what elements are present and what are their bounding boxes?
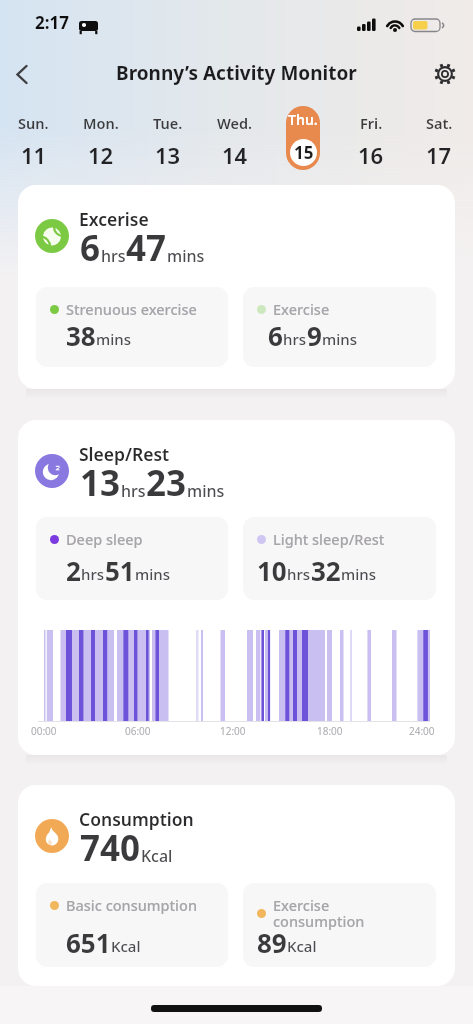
button[interactable]: Sun. (0, 106, 67, 170)
staticText: 89 (257, 925, 287, 960)
staticText: Consumption (79, 807, 194, 831)
staticText: Mon. (83, 113, 119, 133)
staticText: 18:00 (317, 724, 343, 738)
button[interactable]: Sleep/Rest (18, 420, 455, 755)
button[interactable]: Thu. (286, 106, 320, 170)
staticText: hrs (283, 329, 307, 349)
staticText: 740 (80, 824, 141, 872)
staticText: Sleep/Rest (79, 442, 170, 466)
staticText: mins (167, 245, 205, 267)
staticText: 47 (126, 224, 167, 272)
staticText: 32 (311, 553, 341, 588)
staticText: 6 (268, 318, 283, 353)
staticText: Light sleep/Rest (273, 529, 385, 549)
staticText: 24:00 (409, 724, 435, 738)
button[interactable]: Mon. (67, 106, 134, 170)
staticText: 11 (21, 140, 47, 170)
staticText: 12:00 (220, 724, 246, 738)
staticText: 13 (155, 140, 181, 170)
staticText: 06:00 (125, 724, 151, 738)
staticText: 13 (80, 459, 121, 507)
staticText: Tue. (153, 113, 183, 133)
staticText: Kcal (287, 936, 317, 956)
button[interactable]: Deep sleep (36, 517, 228, 600)
staticText: Bronny’s Activity Monitor (116, 60, 357, 86)
staticText: 14 (222, 140, 248, 170)
staticText: Thu. (288, 110, 318, 129)
button[interactable]: Fri. (337, 106, 405, 170)
staticText: Sat. (426, 113, 453, 133)
button[interactable] (430, 58, 460, 88)
button[interactable]: Light sleep/Rest (243, 517, 436, 600)
staticText: 651 (66, 925, 111, 960)
staticText: mins (96, 329, 131, 349)
button[interactable]: Tue. (134, 106, 201, 170)
staticText: 23 (146, 459, 187, 507)
button[interactable]: Exercise (243, 287, 436, 367)
button[interactable]: Excerise (18, 185, 455, 389)
staticText: 9 (307, 318, 322, 353)
staticText: mins (135, 564, 170, 584)
staticText: Exercise consumption (273, 895, 383, 932)
staticText: 15 (294, 141, 314, 164)
staticText: Basic consumption (66, 895, 197, 915)
staticText: 2 (66, 553, 81, 588)
staticText: Fri. (360, 113, 383, 133)
button[interactable]: Consumption (18, 785, 455, 986)
staticText: Sun. (18, 113, 49, 133)
staticText: Exercise (273, 299, 330, 319)
button[interactable]: Wed. (201, 106, 269, 170)
staticText: 6 (80, 224, 101, 272)
staticText: Kcal (111, 936, 141, 956)
button[interactable]: Strenuous exercise (36, 287, 228, 367)
staticText: hrs (81, 564, 105, 584)
staticText: 51 (105, 553, 135, 588)
staticText: Wed. (217, 113, 253, 133)
staticText: Kcal (141, 845, 173, 867)
staticText: 16 (358, 140, 384, 170)
staticText: 00:00 (31, 724, 57, 738)
staticText: Excerise (79, 207, 149, 231)
staticText: 38 (66, 318, 96, 353)
staticText: 2:17 (35, 11, 69, 34)
staticText: Strenuous exercise (66, 299, 197, 319)
button[interactable]: Basic consumption (36, 883, 228, 967)
staticText: hrs (101, 245, 126, 267)
staticText: Deep sleep (66, 529, 143, 549)
staticText: mins (322, 329, 357, 349)
staticText: 17 (426, 140, 452, 170)
staticText: mins (341, 564, 376, 584)
staticText: mins (187, 480, 225, 502)
staticText: 12 (88, 140, 114, 170)
staticText: hrs (121, 480, 146, 502)
staticText: 10 (257, 553, 287, 588)
button[interactable] (8, 57, 40, 91)
button[interactable]: Sat. (405, 106, 473, 170)
button[interactable]: Exercise consumption (243, 883, 436, 967)
staticText: hrs (287, 564, 311, 584)
